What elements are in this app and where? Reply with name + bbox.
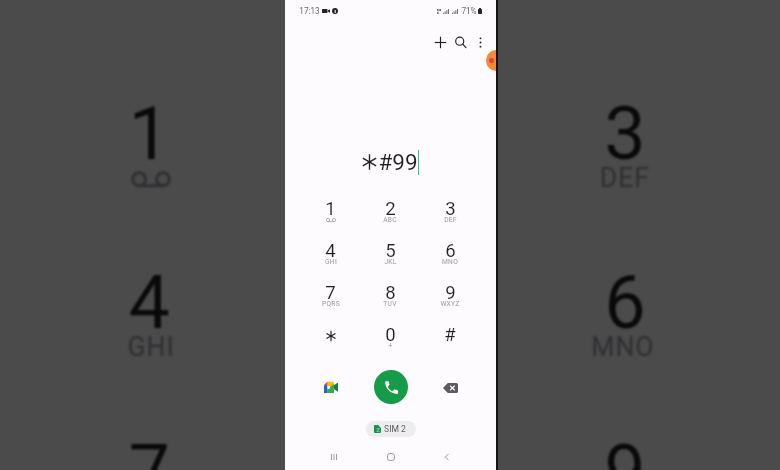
button[interactable]: 9 xyxy=(504,412,742,470)
staticText: ABC xyxy=(357,163,413,195)
staticText: 7 xyxy=(127,428,171,470)
button[interactable]: More options xyxy=(470,32,490,52)
staticText: 4 xyxy=(325,240,336,262)
staticText: PQRS xyxy=(322,300,340,308)
button[interactable]: 4 xyxy=(301,236,360,278)
button[interactable]: 9 xyxy=(420,278,480,320)
staticText: 1 xyxy=(325,198,336,220)
staticText: # xyxy=(444,324,456,346)
button[interactable]: 7 xyxy=(32,412,266,470)
staticText: SIM 2 xyxy=(384,424,406,434)
staticText: 4 xyxy=(127,260,171,348)
button[interactable]: 3 xyxy=(504,75,742,244)
staticText: 8 xyxy=(365,428,409,470)
button[interactable]: 1 xyxy=(32,75,266,244)
button[interactable]: Home xyxy=(369,446,413,468)
staticText: DEF xyxy=(599,163,651,195)
staticText: 71% xyxy=(461,6,477,16)
staticText: 1 xyxy=(127,91,171,179)
staticText: #99 xyxy=(378,149,418,175)
staticText: WXYZ xyxy=(440,300,460,308)
button[interactable]: Search xyxy=(450,32,470,52)
staticText: 6 xyxy=(445,240,456,262)
staticText: 9 xyxy=(603,428,647,470)
button[interactable]: 8 xyxy=(266,412,504,470)
staticText: 9 xyxy=(445,282,456,304)
staticText: 7 xyxy=(325,282,336,304)
staticText: JKL xyxy=(361,332,413,364)
button[interactable]: 2 xyxy=(266,75,504,244)
staticText: 0 xyxy=(385,324,396,346)
button[interactable]: 2 xyxy=(360,194,420,236)
button[interactable]: 2 xyxy=(366,421,416,437)
staticText: + xyxy=(388,342,393,350)
button[interactable]: 3 xyxy=(420,194,480,236)
button[interactable]: 1 xyxy=(301,194,360,236)
staticText: TUV xyxy=(383,300,397,308)
button[interactable]: 6 xyxy=(420,236,480,278)
staticText: 17:13 xyxy=(299,6,320,16)
button[interactable]: Video call xyxy=(320,376,341,397)
button[interactable]: 5 xyxy=(266,244,504,412)
button[interactable]: Call xyxy=(374,370,408,404)
staticText: 6 xyxy=(603,260,647,348)
staticText: 5 xyxy=(365,260,409,348)
staticText: 2 xyxy=(376,426,380,433)
button[interactable] xyxy=(301,320,360,362)
staticText: MNO xyxy=(591,332,655,364)
staticText: 5 xyxy=(385,240,396,262)
button[interactable]: 5 xyxy=(360,236,420,278)
staticText: 3 xyxy=(445,198,456,220)
staticText: 3 xyxy=(603,91,647,179)
button[interactable]: 0 xyxy=(360,320,420,362)
button[interactable]: 4 xyxy=(32,244,266,412)
button[interactable]: Add contact xyxy=(430,32,450,52)
staticText: MNO xyxy=(442,258,458,266)
staticText: GHI xyxy=(127,332,175,364)
staticText: 2 xyxy=(365,91,409,179)
staticText: DEF xyxy=(444,216,457,224)
staticText: 8 xyxy=(385,282,396,304)
button[interactable]: Back xyxy=(425,446,469,468)
staticText: GHI xyxy=(325,258,337,266)
button[interactable]: 7 xyxy=(301,278,360,320)
button[interactable]: 6 xyxy=(504,244,742,412)
staticText: ABC xyxy=(383,216,397,224)
button[interactable]: Floating chat bubble xyxy=(486,50,496,71)
button[interactable]: Recent apps xyxy=(312,446,356,468)
button[interactable]: 8 xyxy=(360,278,420,320)
staticText: JKL xyxy=(384,258,397,266)
button[interactable]: Backspace xyxy=(440,377,461,398)
button[interactable]: # xyxy=(420,320,480,362)
staticText: 2 xyxy=(385,198,396,220)
